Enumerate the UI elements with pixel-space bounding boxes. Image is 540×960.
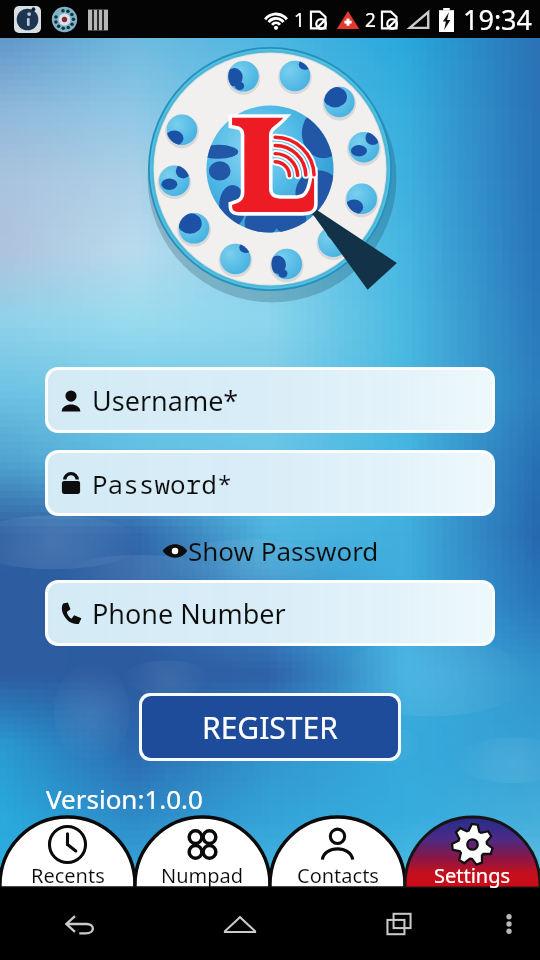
staticText: Recents bbox=[31, 862, 105, 889]
button[interactable]: Recents bbox=[0, 817, 135, 888]
staticText: Contacts bbox=[297, 862, 379, 889]
button[interactable]: Password* bbox=[48, 453, 492, 513]
button[interactable]: Recent apps bbox=[319, 888, 478, 960]
button[interactable]: REGISTER bbox=[142, 696, 398, 758]
staticText: Settings bbox=[434, 862, 511, 889]
button[interactable]: Home bbox=[160, 888, 319, 960]
staticText: Numpad bbox=[161, 862, 244, 889]
button[interactable]: Settings bbox=[405, 817, 540, 888]
staticText: Username* bbox=[92, 382, 239, 419]
button[interactable]: Back bbox=[0, 888, 160, 960]
staticText: 2 bbox=[365, 7, 376, 33]
button[interactable]: Contacts bbox=[270, 817, 405, 888]
button[interactable]: More options bbox=[478, 888, 540, 960]
button[interactable]: Phone Number bbox=[48, 583, 492, 643]
staticText: Phone Number bbox=[92, 595, 286, 632]
button[interactable]: Username* bbox=[48, 370, 492, 430]
staticText: Version:1.0.0 bbox=[46, 781, 203, 816]
staticText: Show Password bbox=[188, 533, 379, 568]
button[interactable]: Show Password bbox=[156, 530, 385, 571]
staticText: 19:34 bbox=[463, 1, 533, 38]
button[interactable]: Numpad bbox=[135, 817, 270, 888]
staticText: REGISTER bbox=[202, 707, 338, 748]
staticText: Password* bbox=[92, 466, 233, 501]
staticText: 1 bbox=[294, 7, 305, 33]
